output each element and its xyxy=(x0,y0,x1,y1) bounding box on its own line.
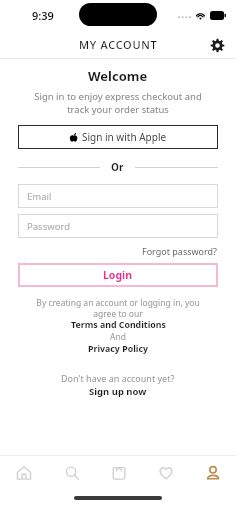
button[interactable]: Sign in with Apple xyxy=(18,125,218,149)
staticText: Or xyxy=(111,160,124,174)
staticText: Welcome xyxy=(88,67,148,85)
button[interactable]: Email xyxy=(18,184,218,208)
staticText: And xyxy=(110,331,126,343)
button[interactable]: Terms and Conditions xyxy=(71,319,166,331)
staticText: By creating an account or logging in, yo… xyxy=(36,297,200,319)
button[interactable]: Password xyxy=(18,214,218,238)
staticText: Email xyxy=(27,190,52,203)
button[interactable]: Home xyxy=(0,456,48,490)
button[interactable]: Bag xyxy=(95,456,142,490)
button[interactable]: Search xyxy=(48,456,95,490)
button[interactable]: Wishlist xyxy=(142,456,189,490)
staticText: Sign in to enjoy express checkout and tr… xyxy=(34,90,202,116)
button[interactable]: Forgot password? xyxy=(142,245,218,257)
staticText: Don't have an account yet? xyxy=(61,372,175,384)
staticText: 9:39 xyxy=(32,8,54,23)
button[interactable]: Settings xyxy=(206,34,228,56)
button[interactable]: Privacy Policy xyxy=(88,343,148,355)
staticText: Sign in with Apple xyxy=(82,130,167,144)
staticText: Login xyxy=(103,268,133,282)
staticText: MY ACCOUNT xyxy=(79,37,158,52)
staticText: Password xyxy=(27,220,70,233)
button[interactable]: Account xyxy=(189,456,236,490)
button[interactable]: Sign up now xyxy=(89,385,147,398)
button[interactable]: Login xyxy=(18,263,218,287)
